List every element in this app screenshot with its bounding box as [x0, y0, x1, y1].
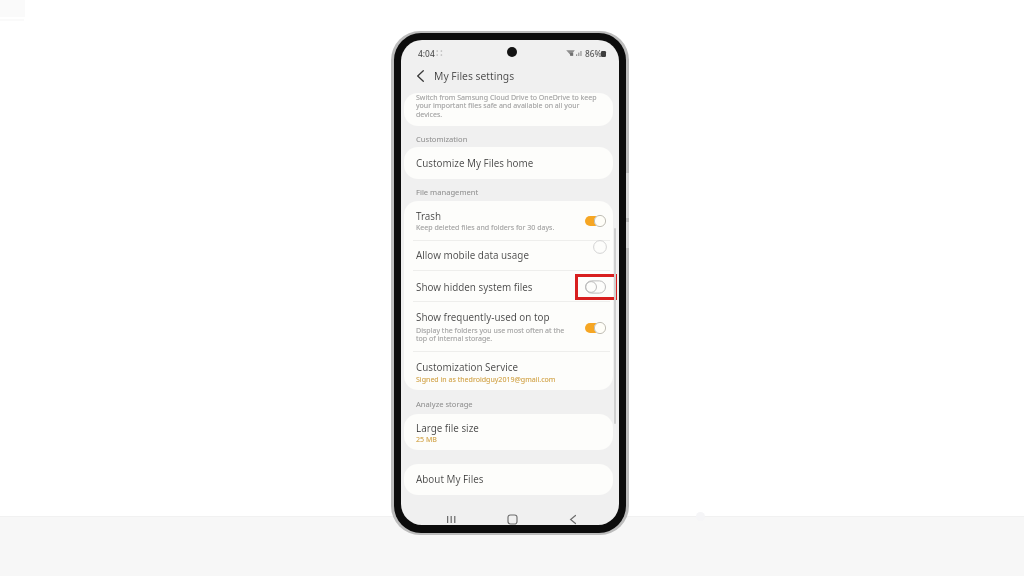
button[interactable]: Switch, off	[585, 240, 606, 254]
staticText: Display the folders you use most often a…	[416, 325, 611, 343]
staticText: Customization Service	[416, 360, 518, 373]
button[interactable]: About My Files	[404, 464, 613, 495]
button[interactable]: Show frequently-used on top	[404, 301, 613, 350]
staticText: Trash	[416, 209, 442, 222]
staticText: Large file size	[416, 421, 479, 434]
button[interactable]: Switch, off	[585, 280, 606, 294]
staticText: File management	[416, 187, 479, 197]
button[interactable]: Customization Service	[404, 351, 613, 390]
staticText: Keep deleted files and folders for 30 da…	[416, 222, 611, 232]
button[interactable]: Show hidden system files	[404, 270, 613, 301]
staticText: About My Files	[416, 472, 484, 485]
button[interactable]: Customize My Files home	[404, 147, 613, 179]
staticText: Customize My Files home	[416, 156, 534, 169]
button[interactable]: Navigate up	[407, 64, 433, 88]
button[interactable]: Switch, on	[585, 214, 606, 228]
button[interactable]: Back	[562, 508, 584, 525]
button[interactable]: Large file size	[404, 414, 613, 450]
staticText: Customization	[416, 134, 468, 144]
staticText: 86%	[585, 48, 602, 59]
button[interactable]: Trash	[404, 201, 613, 240]
staticText: Signed in as thedroidguy2019@gmail.com	[416, 374, 611, 384]
staticText: Analyze storage	[416, 399, 473, 409]
staticText: Show frequently-used on top	[416, 310, 550, 323]
button[interactable]: Switch, on	[585, 321, 606, 335]
staticText: 25 MB	[416, 434, 611, 444]
staticText: Switch from Samsung Cloud Drive to OneDr…	[416, 92, 611, 119]
button[interactable]: Recent apps	[440, 508, 462, 525]
staticText: 4:04	[418, 48, 435, 59]
button[interactable]: Allow mobile data usage	[404, 240, 613, 270]
staticText: My Files settings	[434, 69, 515, 83]
button[interactable]: Home	[501, 508, 523, 525]
staticText: Allow mobile data usage	[416, 248, 529, 261]
staticText: Show hidden system files	[416, 280, 533, 293]
